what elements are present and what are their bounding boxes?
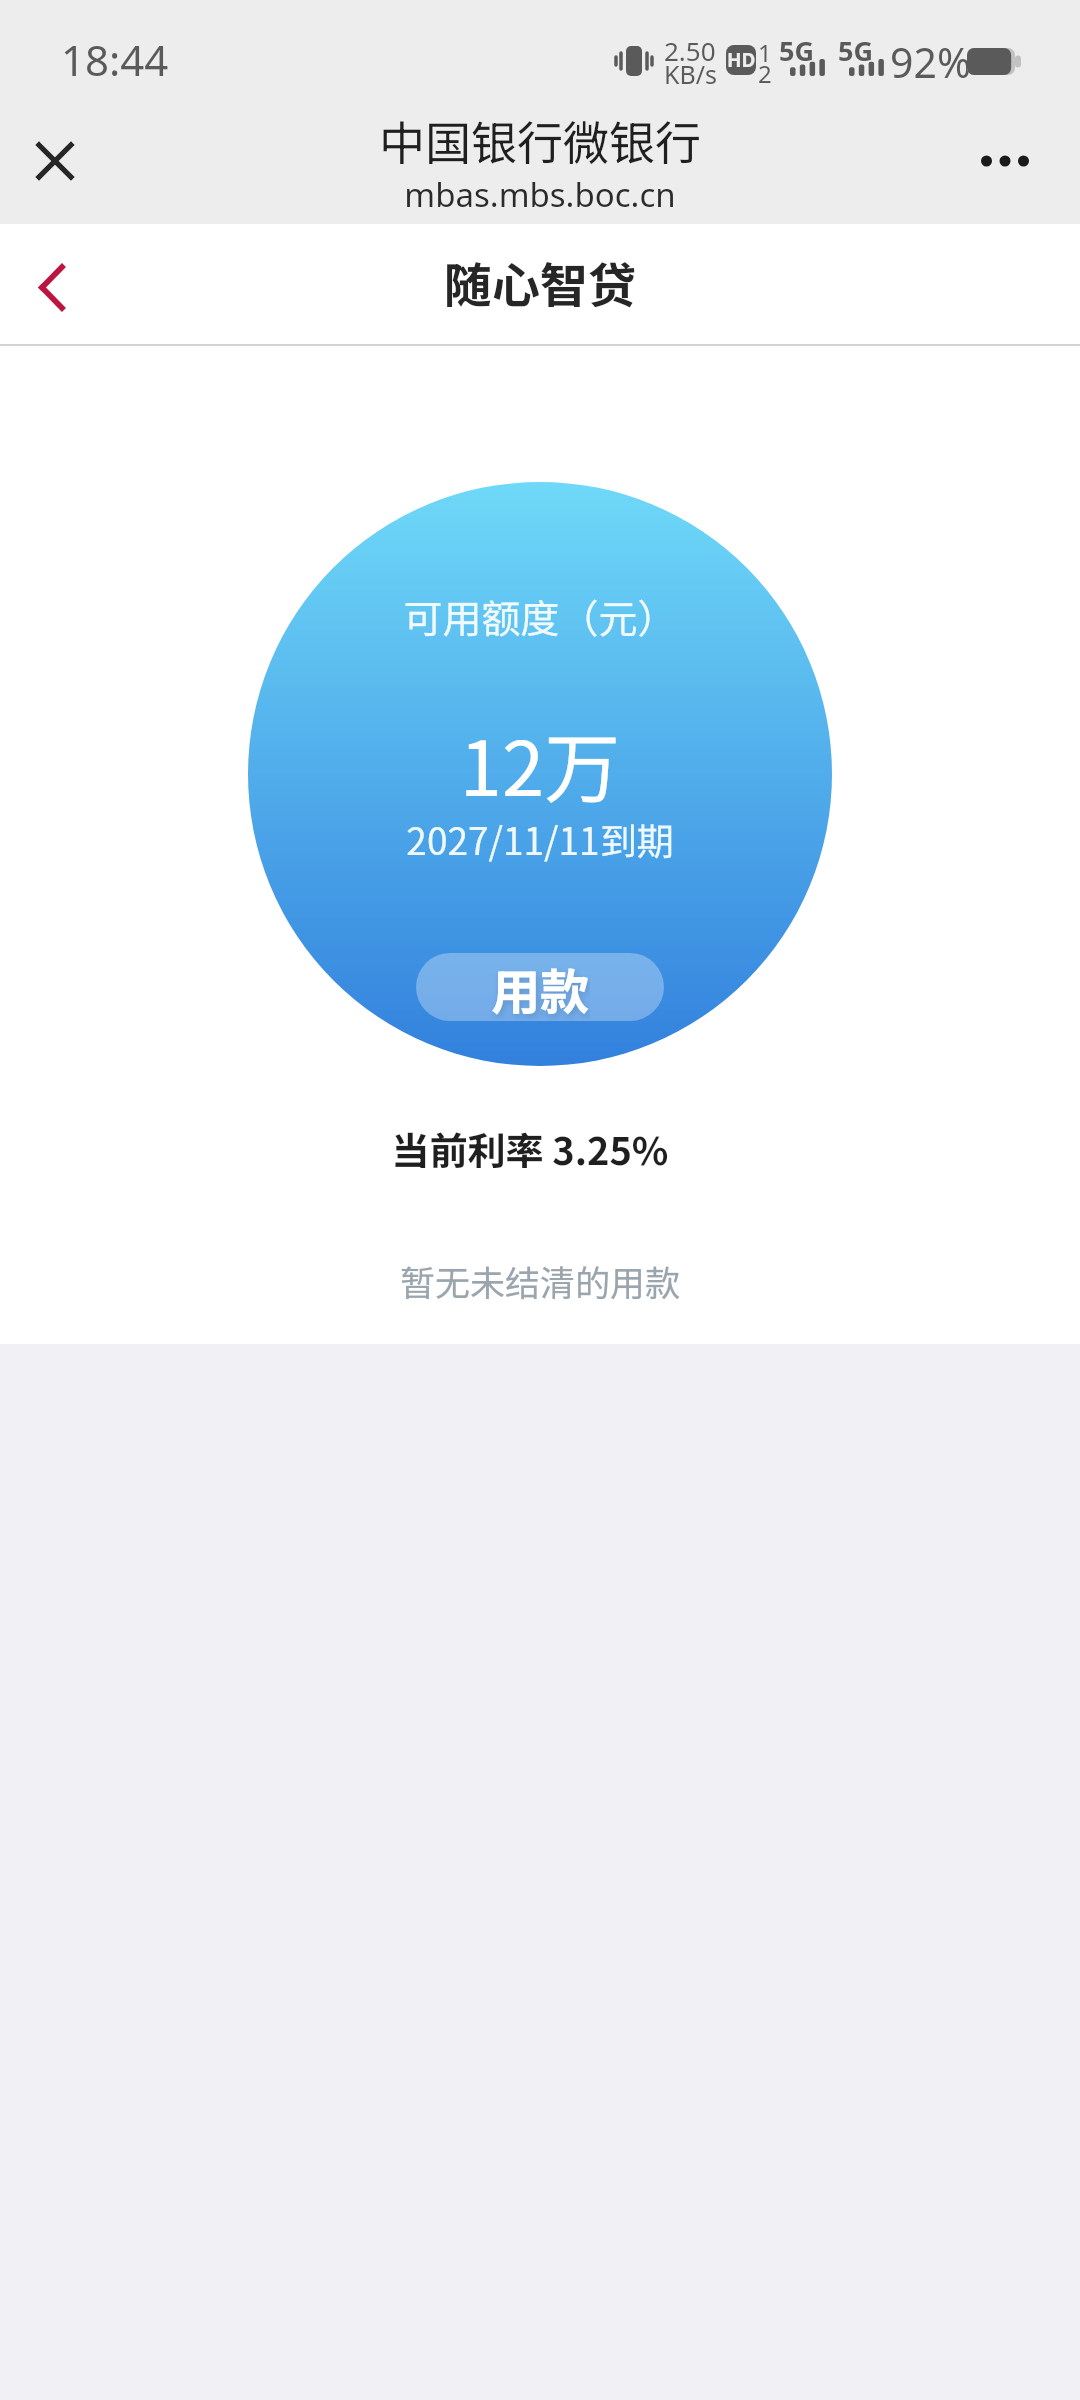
staticText: 92% bbox=[890, 34, 971, 90]
staticText: 12万 bbox=[248, 708, 832, 818]
staticText: 18:44 bbox=[61, 31, 169, 88]
staticText: 当前利率 3.25% bbox=[0, 1121, 1070, 1176]
staticText: 5G bbox=[779, 32, 814, 69]
staticText: 可用额度（元） bbox=[248, 588, 832, 644]
button[interactable]: Close bbox=[19, 125, 91, 197]
staticText: 2.50 bbox=[664, 33, 716, 68]
staticText: 2 bbox=[758, 57, 772, 90]
staticText: HD bbox=[727, 47, 756, 73]
staticText: 暂无未结清的用款 bbox=[0, 1255, 1080, 1306]
staticText: KB/s bbox=[664, 57, 718, 91]
staticText: 1 bbox=[758, 36, 772, 69]
staticText: 中国银行微银行 bbox=[0, 107, 1080, 174]
button[interactable]: Back bbox=[13, 249, 89, 325]
button[interactable]: More options bbox=[969, 125, 1041, 197]
staticText: 随心智贷 bbox=[0, 247, 1080, 317]
staticText: mbas.mbs.boc.cn bbox=[0, 172, 1080, 217]
staticText: 2027/11/11到期 bbox=[248, 812, 832, 866]
button[interactable]: 用款 bbox=[416, 953, 664, 1021]
staticText: 5G bbox=[838, 32, 873, 69]
staticText: 用款 bbox=[491, 953, 590, 1021]
